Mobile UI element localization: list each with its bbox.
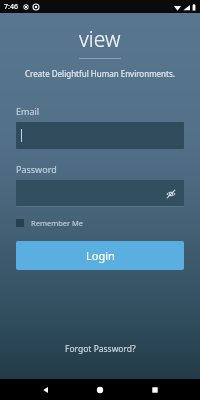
staticText: Email: [16, 105, 40, 117]
button[interactable]: Home: [91, 381, 109, 399]
button[interactable]: Recent apps: [146, 381, 164, 399]
staticText: view: [79, 25, 121, 54]
button[interactable]: Back: [37, 381, 55, 399]
button[interactable]: Forgot Password?: [0, 343, 200, 355]
button[interactable]: Toggle password visibility: [16, 180, 184, 207]
staticText: Password: [16, 163, 57, 175]
staticText: Create Delightful Human Environments.: [25, 68, 175, 79]
button[interactable]: Toggle password visibility: [162, 185, 180, 203]
staticText: Forgot Password?: [65, 343, 136, 355]
button[interactable]: [16, 122, 184, 149]
staticText: 7:46: [4, 2, 18, 12]
staticText: Login: [86, 248, 115, 263]
staticText: Remember Me: [31, 218, 84, 228]
button[interactable]: Login: [16, 241, 184, 270]
button[interactable]: Remember Me: [16, 218, 84, 228]
